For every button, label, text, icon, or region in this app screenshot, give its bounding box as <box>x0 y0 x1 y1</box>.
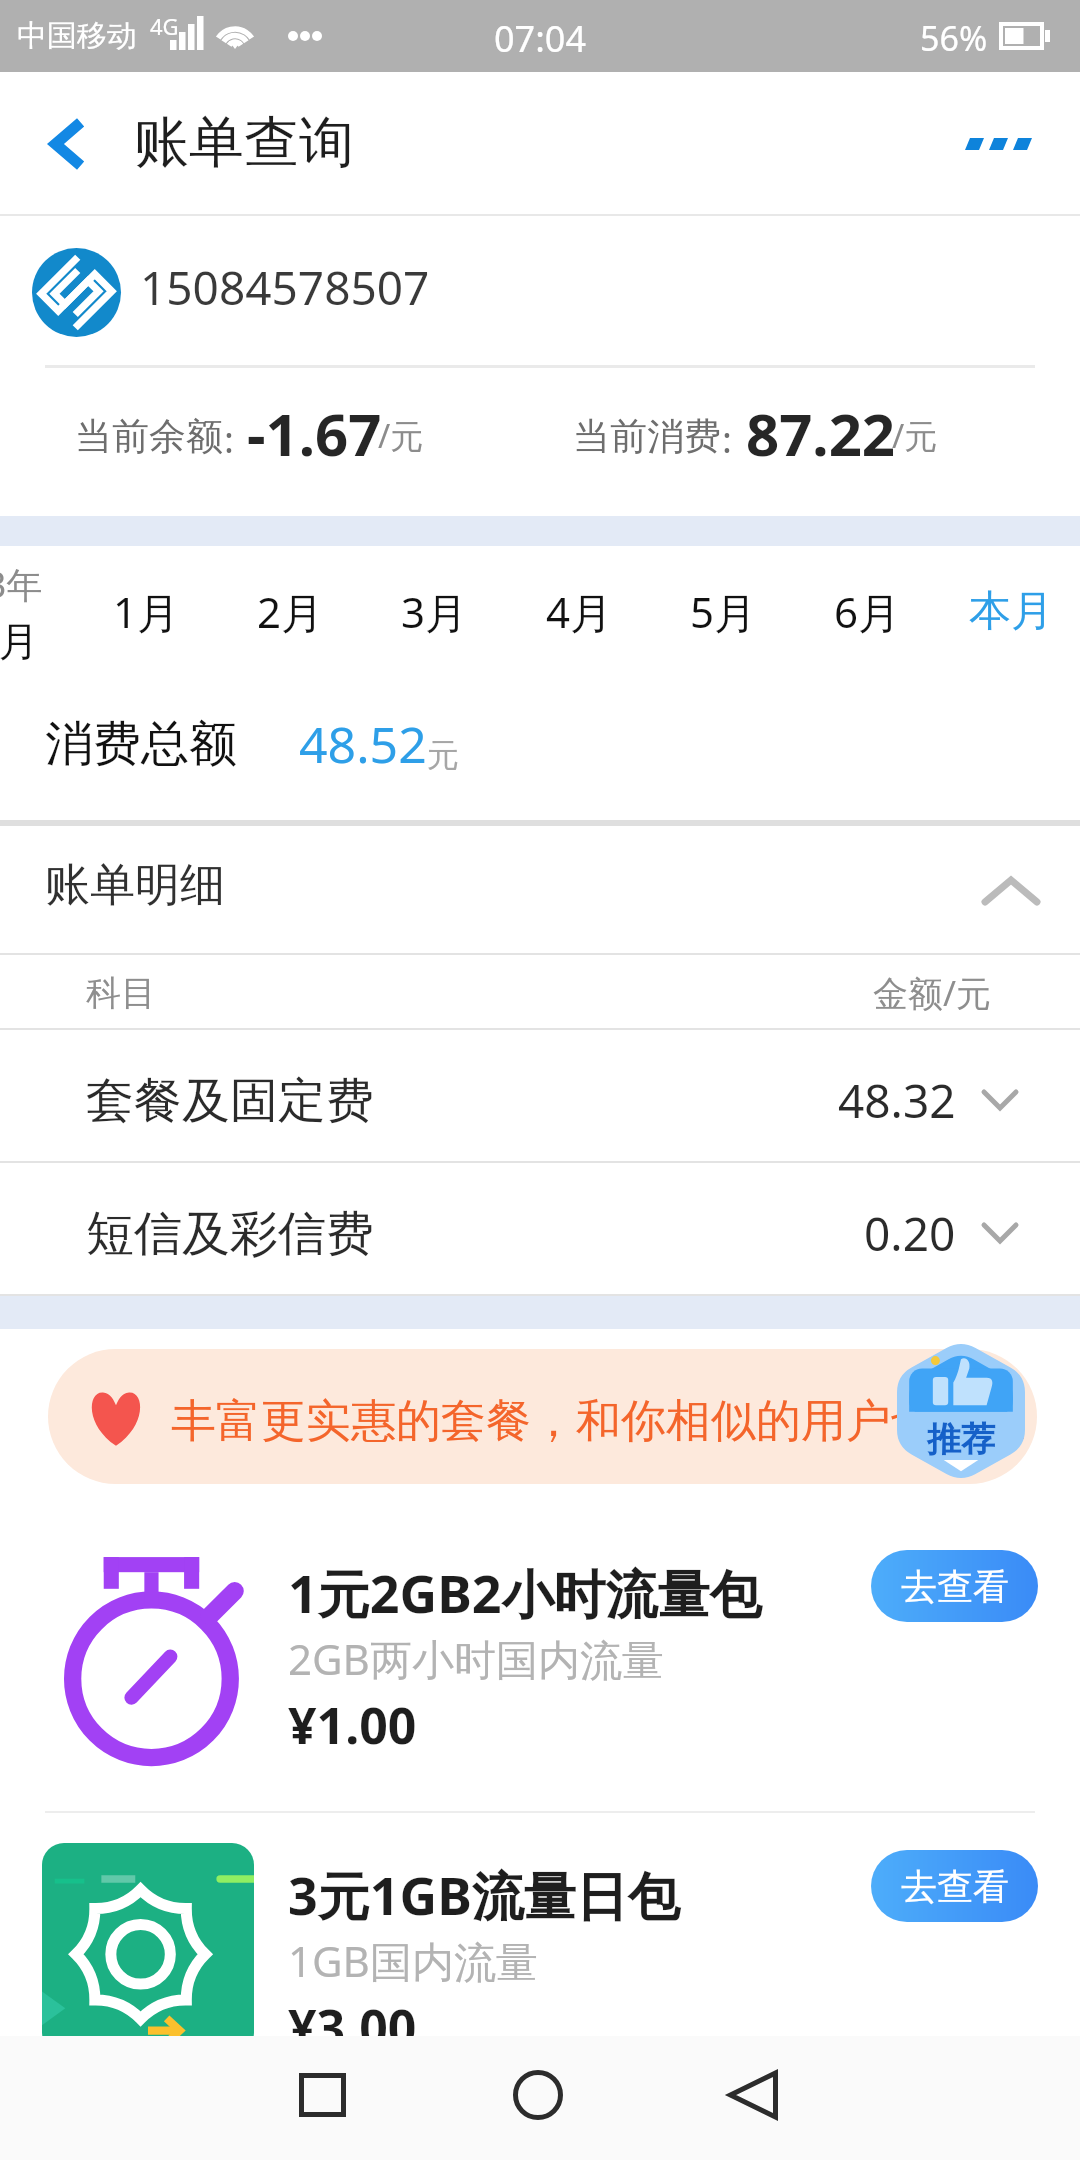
staticText: /元 <box>892 413 938 458</box>
staticText: 1GB国内流量 <box>288 1932 538 1989</box>
button[interactable]: 去查看 <box>871 1550 1038 1622</box>
staticText: 2月 <box>257 583 324 640</box>
staticText: 科目 <box>86 971 156 1015</box>
staticText: 0.20 <box>864 1202 956 1265</box>
staticText: 丰富更实惠的套餐，和你相似的用户也在关 <box>171 1393 1026 1450</box>
staticText: 推荐 <box>927 1418 995 1461</box>
staticText: ¥1.00 <box>288 1691 417 1759</box>
staticText: 金额/元 <box>873 969 992 1017</box>
staticText: 4月 <box>546 583 613 640</box>
staticText: 2GB两小时国内流量 <box>288 1630 664 1687</box>
staticText: 当前消费 <box>573 413 721 460</box>
staticText: 6月 <box>834 583 901 640</box>
button[interactable]: 套餐及固定费 <box>0 1030 1080 1163</box>
staticText: 中国移动 <box>17 17 137 55</box>
staticText: 1月 <box>113 583 180 640</box>
staticText: 48.32 <box>838 1069 956 1132</box>
staticText: 消费总额 <box>45 714 237 774</box>
staticText: 4G <box>150 11 179 41</box>
staticText: 1元2GB2小时流量包 <box>288 1557 762 1628</box>
staticText: 5月 <box>690 583 757 640</box>
button[interactable]: 5月 <box>651 546 795 676</box>
staticText: 去查看 <box>901 1864 1009 1909</box>
button[interactable]: 3元1GB流量日包 <box>0 1813 1080 2160</box>
button[interactable]: 1月 <box>74 546 218 676</box>
staticText: 87.22 <box>746 394 896 473</box>
staticText: 去查看 <box>901 1564 1009 1609</box>
staticText: /元 <box>378 413 424 458</box>
staticText: 15084578507 <box>140 256 430 319</box>
staticText: 3元1GB流量日包 <box>288 1859 680 1930</box>
staticText: 账单查询 <box>134 108 354 177</box>
button[interactable]: 本月 <box>939 546 1080 676</box>
staticText: 元 <box>427 735 459 775</box>
staticText: : <box>224 413 234 463</box>
button[interactable]: Recent apps <box>215 2036 430 2160</box>
staticText: 2023年 <box>0 560 43 609</box>
staticText: 56% <box>920 15 988 61</box>
staticText: 48.52 <box>299 710 427 778</box>
staticText: 本月 <box>969 585 1053 638</box>
staticText: 12月 <box>0 612 39 667</box>
staticText: -1.67 <box>247 394 382 473</box>
staticText: 短信及彩信费 <box>86 1204 374 1264</box>
button[interactable]: 1元2GB2小时流量包 <box>0 1500 1080 1813</box>
button[interactable]: Back <box>0 72 126 216</box>
button[interactable]: 3月 <box>362 546 506 676</box>
button[interactable]: Recommended <box>897 1340 1025 1482</box>
staticText: 当前余额 <box>75 413 223 460</box>
staticText: 07:04 <box>494 14 587 63</box>
button[interactable]: 4月 <box>507 546 651 676</box>
staticText: 账单明细 <box>45 857 225 914</box>
button[interactable]: 短信及彩信费 <box>0 1163 1080 1296</box>
button[interactable]: 账单明细 <box>0 826 1080 955</box>
button[interactable]: 丰富更实惠的套餐，和你相似的用户也在关 <box>48 1349 1037 1484</box>
staticText: ¥3.00 <box>288 1993 417 2061</box>
staticText: 套餐及固定费 <box>86 1071 374 1131</box>
button[interactable]: More options <box>914 72 1080 216</box>
button[interactable]: 去查看 <box>871 1850 1038 1922</box>
button[interactable]: Back <box>645 2036 860 2160</box>
button[interactable]: 6月 <box>795 546 939 676</box>
button[interactable]: Home <box>430 2036 645 2160</box>
button[interactable]: 2月 <box>218 546 362 676</box>
staticText: 3月 <box>401 583 468 640</box>
staticText: : <box>722 413 732 463</box>
